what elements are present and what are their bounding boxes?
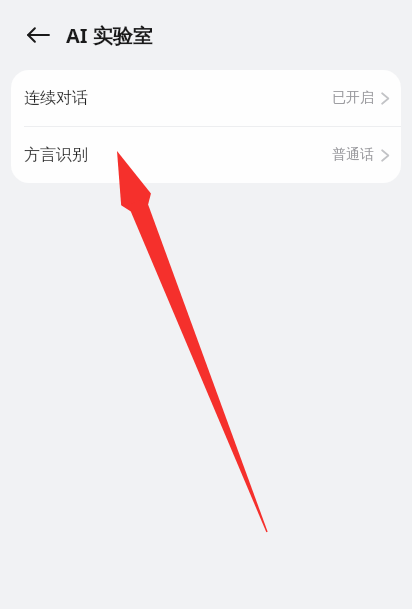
- staticText: AI 实验室: [66, 22, 153, 49]
- button[interactable]: Back: [18, 15, 58, 55]
- staticText: 普通话: [332, 146, 374, 164]
- button[interactable]: 方言识别: [11, 127, 401, 183]
- staticText: 连续对话: [24, 88, 88, 108]
- button[interactable]: 连续对话: [11, 70, 401, 126]
- staticText: 已开启: [332, 89, 374, 107]
- staticText: 方言识别: [24, 145, 88, 165]
